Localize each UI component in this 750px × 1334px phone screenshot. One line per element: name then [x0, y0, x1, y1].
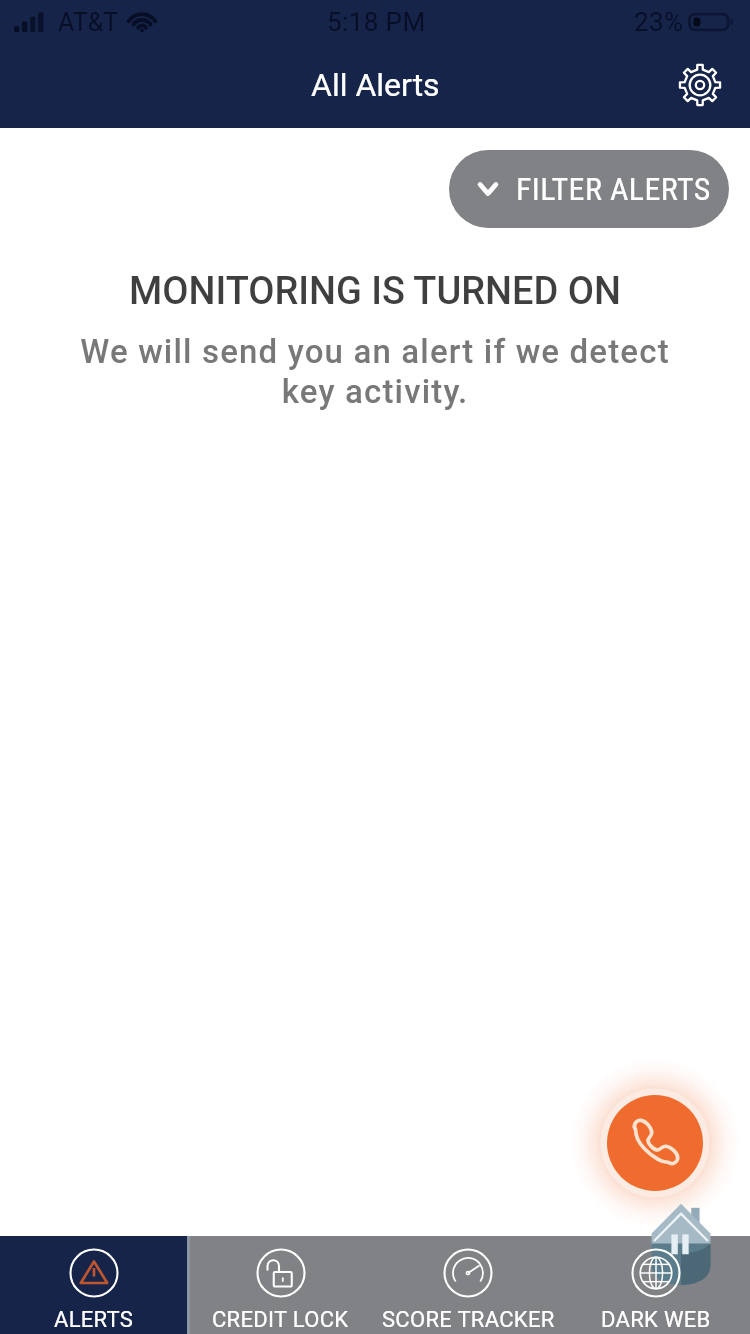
staticText: 23%: [634, 7, 684, 37]
staticText: We will send you an alert if we detect k…: [0, 332, 750, 412]
staticText: FILTER ALERTS: [516, 170, 711, 208]
button[interactable]: Settings: [670, 55, 730, 115]
staticText: MONITORING IS TURNED ON: [0, 269, 750, 314]
staticText: All Alerts: [311, 66, 440, 104]
staticText: CREDIT LOCK: [212, 1307, 349, 1333]
staticText: SCORE TRACKER: [382, 1307, 555, 1333]
staticText: 5:18 PM: [327, 7, 426, 37]
button[interactable]: ALERTS: [0, 1236, 187, 1334]
button[interactable]: CREDIT LOCK: [187, 1236, 374, 1334]
button[interactable]: FILTER ALERTS: [449, 150, 729, 228]
staticText: DARK WEB: [601, 1307, 711, 1333]
button[interactable]: DARK WEB: [562, 1236, 750, 1334]
staticText: ALERTS: [54, 1307, 134, 1333]
staticText: AT&T: [58, 8, 119, 37]
button[interactable]: SCORE TRACKER: [374, 1236, 562, 1334]
button[interactable]: Call support: [607, 1095, 703, 1191]
